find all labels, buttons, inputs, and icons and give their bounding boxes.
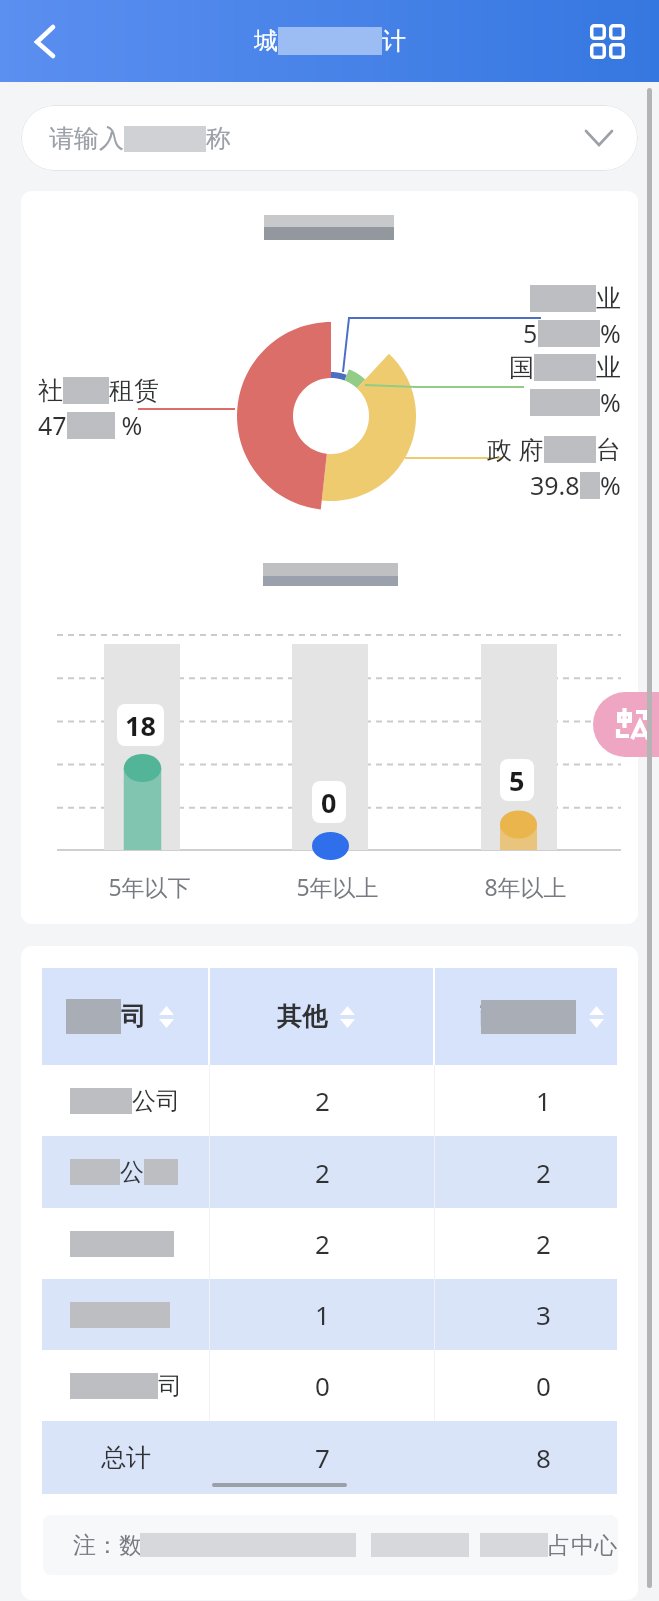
button[interactable]: 公 <box>42 1136 617 1208</box>
staticText: 计 <box>382 26 406 56</box>
button[interactable]: Apps <box>580 14 635 69</box>
staticText: 司 <box>121 1001 146 1032</box>
staticText: 3 <box>536 1297 551 1332</box>
staticText: 城 <box>254 26 278 56</box>
staticText: 公 <box>120 1157 144 1187</box>
staticText: 0 <box>315 1368 330 1403</box>
staticText: 公司 <box>132 1086 180 1116</box>
staticText: 1 <box>536 1083 551 1118</box>
staticText: % <box>600 385 621 419</box>
staticText: % <box>115 408 143 442</box>
button[interactable]: 公司 <box>42 1065 617 1136</box>
staticText: 注：数 <box>73 1531 142 1560</box>
staticText: % <box>600 468 621 502</box>
button[interactable]: Back <box>17 12 77 72</box>
staticText: 称 <box>206 123 231 154</box>
button[interactable]: 1 <box>42 1279 617 1350</box>
staticText: 2 <box>315 1083 330 1118</box>
staticText: 47 <box>38 408 67 442</box>
staticText: 5年以上 <box>296 871 379 902</box>
button[interactable]: 司 <box>42 968 210 1065</box>
button[interactable]: 总计 <box>42 1421 617 1494</box>
staticText: 5 <box>523 316 538 350</box>
button[interactable]: Translate <box>593 692 659 757</box>
staticText: 业 <box>596 352 621 383</box>
staticText: 8 <box>536 1440 551 1475</box>
button[interactable]: 2 <box>42 1208 617 1279</box>
staticText: 8年以上 <box>484 871 567 902</box>
staticText: 2 <box>536 1155 551 1190</box>
button[interactable]: 其他 <box>210 968 435 1065</box>
staticText: 0 <box>536 1368 551 1403</box>
staticText: 1 <box>315 1297 330 1332</box>
staticText: 国 <box>509 352 534 383</box>
staticText: 请输入 <box>49 123 124 154</box>
staticText: 0 <box>321 784 337 821</box>
staticText: 司 <box>158 1371 182 1401</box>
staticText: 其他 <box>277 1001 327 1032</box>
staticText: 2 <box>315 1155 330 1190</box>
staticText: 政 府 <box>487 432 544 466</box>
button[interactable]: 司 <box>42 1350 617 1421</box>
staticText: 7 <box>315 1440 330 1475</box>
staticText: 总计 <box>101 1442 151 1473</box>
staticText: 已 <box>478 1002 503 1033</box>
staticText: 2 <box>536 1226 551 1261</box>
button[interactable]: 已 <box>435 968 617 1065</box>
staticText: 18 <box>125 707 156 744</box>
staticText: 租赁 <box>109 375 159 406</box>
staticText: 业 <box>596 283 621 314</box>
staticText: 占中心 <box>548 1531 617 1560</box>
staticText: % <box>600 316 621 350</box>
staticText: 2 <box>315 1226 330 1261</box>
button[interactable]: 请输入 <box>21 105 638 171</box>
staticText: 5年以下 <box>108 871 191 902</box>
staticText: 39.8 <box>530 468 580 502</box>
staticText: 5 <box>509 762 525 799</box>
staticText: 台 <box>596 434 621 465</box>
staticText: 社 <box>38 375 63 406</box>
